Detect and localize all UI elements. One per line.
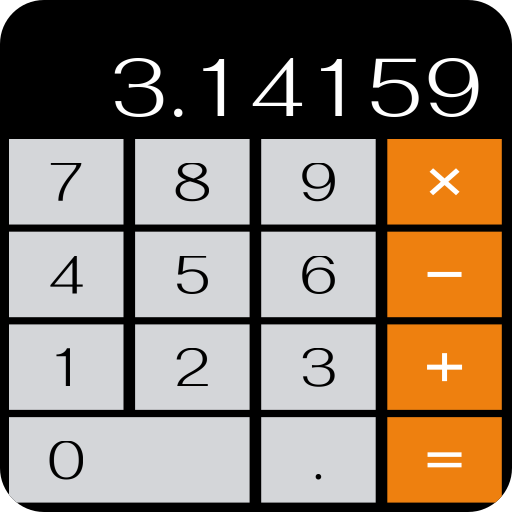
staticText: 0: [48, 425, 84, 494]
staticText: 3: [300, 332, 336, 402]
button[interactable]: 8: [135, 139, 250, 224]
button[interactable]: 1: [9, 324, 123, 410]
button[interactable]: 5: [135, 232, 250, 317]
staticText: 7: [48, 147, 84, 216]
staticText: 1: [48, 332, 84, 402]
button[interactable]: Multiply: [387, 139, 502, 224]
staticText: .: [313, 425, 324, 494]
button[interactable]: 0: [9, 417, 250, 503]
staticText: 5: [174, 240, 210, 309]
button[interactable]: Add: [387, 324, 502, 410]
button[interactable]: 9: [261, 139, 376, 224]
staticText: 8: [174, 147, 210, 216]
staticText: 6: [300, 240, 336, 309]
staticText: 2: [174, 332, 210, 402]
button[interactable]: 2: [135, 324, 250, 410]
button[interactable]: 6: [261, 232, 376, 317]
button[interactable]: Subtract: [387, 232, 502, 317]
staticText: 3.14159: [111, 34, 481, 140]
button[interactable]: Equals: [387, 417, 502, 503]
button[interactable]: .: [261, 417, 376, 503]
staticText: 4: [48, 240, 84, 309]
staticText: 9: [300, 147, 336, 216]
button[interactable]: 7: [9, 139, 123, 224]
button[interactable]: 4: [9, 232, 123, 317]
button[interactable]: 3: [261, 324, 376, 410]
